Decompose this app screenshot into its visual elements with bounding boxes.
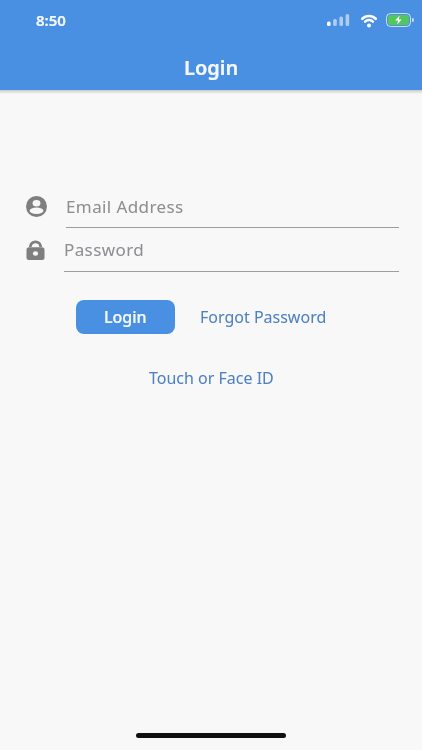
button[interactable]: Email Address: [0, 185, 422, 228]
staticText: Forgot Password: [200, 306, 327, 328]
button[interactable]: Password: [0, 228, 422, 272]
staticText: 8:50: [36, 10, 66, 30]
button[interactable]: Touch or Face ID: [149, 367, 274, 389]
staticText: Touch or Face ID: [149, 367, 274, 389]
staticText: Email Address: [66, 195, 184, 218]
staticText: Password: [64, 238, 145, 261]
button[interactable]: Forgot Password: [200, 306, 327, 328]
staticText: Login: [104, 306, 147, 328]
button[interactable]: Login: [76, 300, 175, 334]
staticText: Login: [184, 54, 239, 81]
